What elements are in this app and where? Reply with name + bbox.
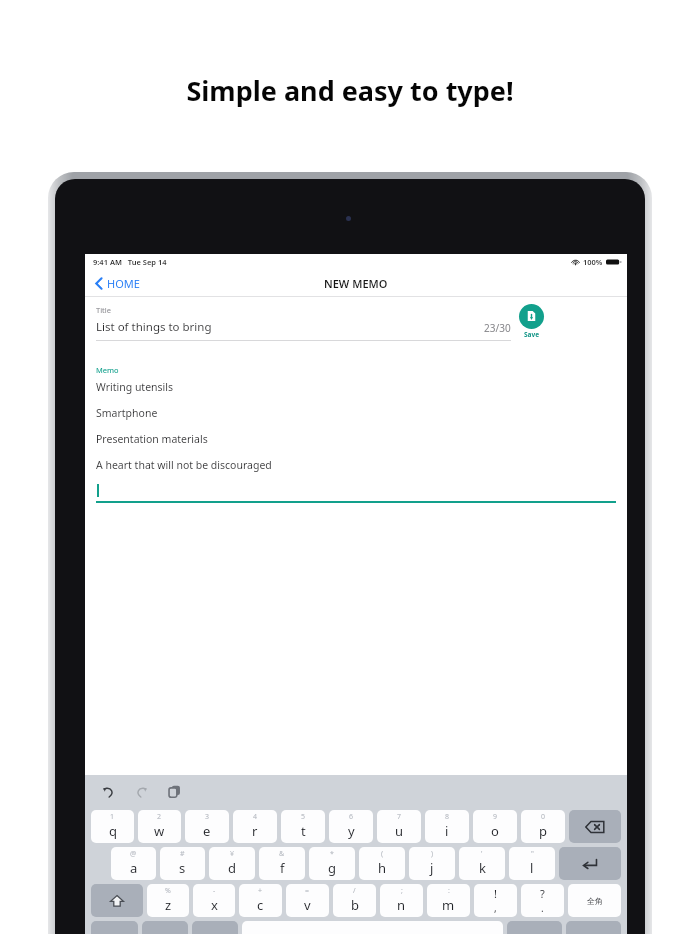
button[interactable]: / <box>333 884 376 917</box>
staticText: f <box>280 859 285 877</box>
button[interactable]: 全角 <box>568 884 621 917</box>
staticText: ¥ <box>230 849 235 859</box>
staticText: 9:41 AM Tue Sep 14 <box>93 257 167 267</box>
staticText: h <box>378 859 387 877</box>
button[interactable]: 0 <box>521 810 565 843</box>
button[interactable]: ) <box>409 847 455 880</box>
button[interactable]: Shift <box>91 884 143 917</box>
staticText: / <box>353 886 356 896</box>
staticText: 100% <box>583 257 603 267</box>
staticText: ; <box>401 886 403 896</box>
button[interactable]: Undo <box>99 782 118 801</box>
staticText: a <box>130 859 138 877</box>
button[interactable]: Return <box>559 847 621 880</box>
staticText: b <box>351 896 359 914</box>
staticText: Writing utensils <box>96 380 174 394</box>
button[interactable]: 7 <box>377 810 421 843</box>
staticText: t <box>301 822 306 840</box>
staticText: u <box>395 822 404 840</box>
staticText: j <box>430 859 434 877</box>
button[interactable]: ! <box>474 884 517 917</box>
button[interactable]: : <box>427 884 470 917</box>
staticText: % <box>165 886 171 896</box>
staticText: = <box>305 886 310 896</box>
button[interactable]: 4 <box>233 810 277 843</box>
staticText: e <box>203 822 211 840</box>
staticText: HOME <box>107 276 140 291</box>
staticText: m <box>442 896 455 914</box>
staticText: 2 <box>157 812 162 822</box>
button[interactable]: * <box>309 847 355 880</box>
button[interactable]: ; <box>380 884 423 917</box>
staticText: o <box>491 822 499 840</box>
button[interactable]: 5 <box>281 810 325 843</box>
staticText: s <box>179 859 186 877</box>
staticText: ) <box>431 849 434 859</box>
staticText: Smartphone <box>96 406 158 420</box>
staticText: * <box>330 849 334 859</box>
button[interactable]: 9 <box>473 810 517 843</box>
staticText: r <box>252 822 258 840</box>
staticText: List of things to bring <box>96 319 212 335</box>
staticText: d <box>228 859 236 877</box>
staticText: ’ <box>481 849 483 859</box>
staticText: # <box>180 849 185 859</box>
button[interactable]: " <box>509 847 555 880</box>
button[interactable]: Next <box>507 921 562 934</box>
staticText: ! <box>494 886 497 901</box>
button[interactable]: Save <box>517 302 546 341</box>
staticText: k <box>479 859 486 877</box>
button[interactable]: 2 <box>138 810 181 843</box>
button[interactable]: & <box>259 847 305 880</box>
staticText: 4 <box>253 812 258 822</box>
staticText: 6 <box>349 812 354 822</box>
staticText: . <box>541 901 544 915</box>
staticText: Presentation materials <box>96 432 208 446</box>
staticText: g <box>328 859 336 877</box>
button[interactable]: - <box>193 884 235 917</box>
staticText: + <box>258 886 263 896</box>
staticText: y <box>348 822 355 840</box>
staticText: i <box>445 822 449 840</box>
button[interactable]: Redo <box>132 782 151 801</box>
staticText: @ <box>130 849 137 859</box>
button[interactable]: HOME <box>92 273 143 294</box>
staticText: 1 <box>110 812 115 822</box>
button[interactable]: % <box>147 884 189 917</box>
button[interactable]: @ <box>111 847 156 880</box>
button[interactable]: 8 <box>425 810 469 843</box>
button[interactable]: Backspace <box>569 810 621 843</box>
button[interactable]: + <box>239 884 282 917</box>
button[interactable]: Language <box>192 921 238 934</box>
button[interactable]: ’ <box>459 847 505 880</box>
staticText: - <box>213 886 216 896</box>
staticText: x <box>211 896 218 914</box>
button[interactable]: 6 <box>329 810 373 843</box>
staticText: z <box>165 896 172 914</box>
button[interactable]: Numbers <box>91 921 138 934</box>
button[interactable]: ( <box>359 847 405 880</box>
staticText: Simple and easy to type! <box>186 72 514 109</box>
staticText: A heart that will not be discouraged <box>96 458 272 472</box>
button[interactable]: Title <box>96 305 511 341</box>
staticText: 0 <box>541 812 546 822</box>
button[interactable]: Hide keyboard <box>566 921 621 934</box>
staticText: w <box>154 822 165 840</box>
button[interactable]: Emoji <box>142 921 188 934</box>
button[interactable]: ? <box>521 884 564 917</box>
button[interactable]: 1 <box>91 810 134 843</box>
button[interactable]: Memo <box>96 350 616 503</box>
button[interactable]: = <box>286 884 329 917</box>
staticText: ? <box>540 886 545 901</box>
button[interactable]: # <box>160 847 205 880</box>
staticText: : <box>448 886 450 896</box>
button[interactable]: ¥ <box>209 847 255 880</box>
staticText: 23/30 <box>484 321 511 335</box>
staticText: 9 <box>493 812 498 822</box>
staticText: n <box>397 896 406 914</box>
staticText: l <box>530 859 534 877</box>
staticText: Save <box>524 330 540 339</box>
button[interactable]: 3 <box>185 810 229 843</box>
button[interactable]: Paste <box>165 782 184 801</box>
